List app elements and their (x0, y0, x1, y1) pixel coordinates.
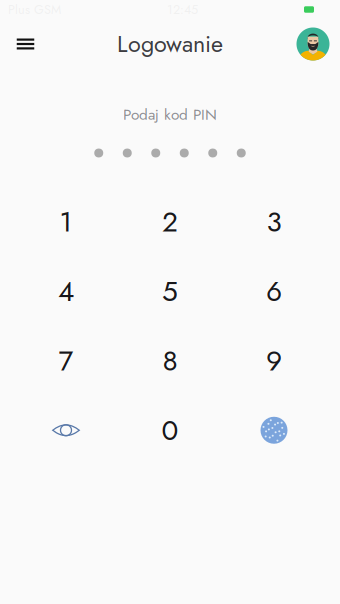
button[interactable]: Show PIN (14, 395, 118, 465)
button[interactable]: 3 (222, 187, 326, 256)
staticText: 4 (58, 271, 74, 311)
button[interactable]: 4 (14, 256, 118, 326)
staticText: 5 (162, 271, 178, 311)
button[interactable]: 5 (118, 256, 222, 326)
button[interactable]: 6 (222, 256, 326, 326)
staticText: 9 (266, 340, 282, 381)
button[interactable]: 9 (222, 326, 326, 395)
staticText: Podaj kod PIN (123, 103, 217, 126)
staticText: 8 (162, 340, 177, 381)
button[interactable]: 1 (14, 187, 118, 256)
button[interactable]: 7 (14, 326, 118, 395)
staticText: 6 (266, 271, 282, 311)
button[interactable]: 0 (118, 395, 222, 465)
button[interactable]: 2 (118, 187, 222, 256)
button[interactable]: 8 (118, 326, 222, 395)
button[interactable]: Menu (0, 19, 51, 69)
staticText: Logowanie (117, 27, 223, 61)
staticText: 3 (266, 201, 281, 242)
staticText: 7 (58, 340, 73, 381)
button[interactable]: Profile (286, 19, 340, 69)
staticText: 1 (59, 201, 72, 242)
button[interactable]: Fingerprint (222, 395, 326, 465)
staticText: 2 (162, 201, 178, 242)
staticText: 0 (161, 410, 178, 450)
